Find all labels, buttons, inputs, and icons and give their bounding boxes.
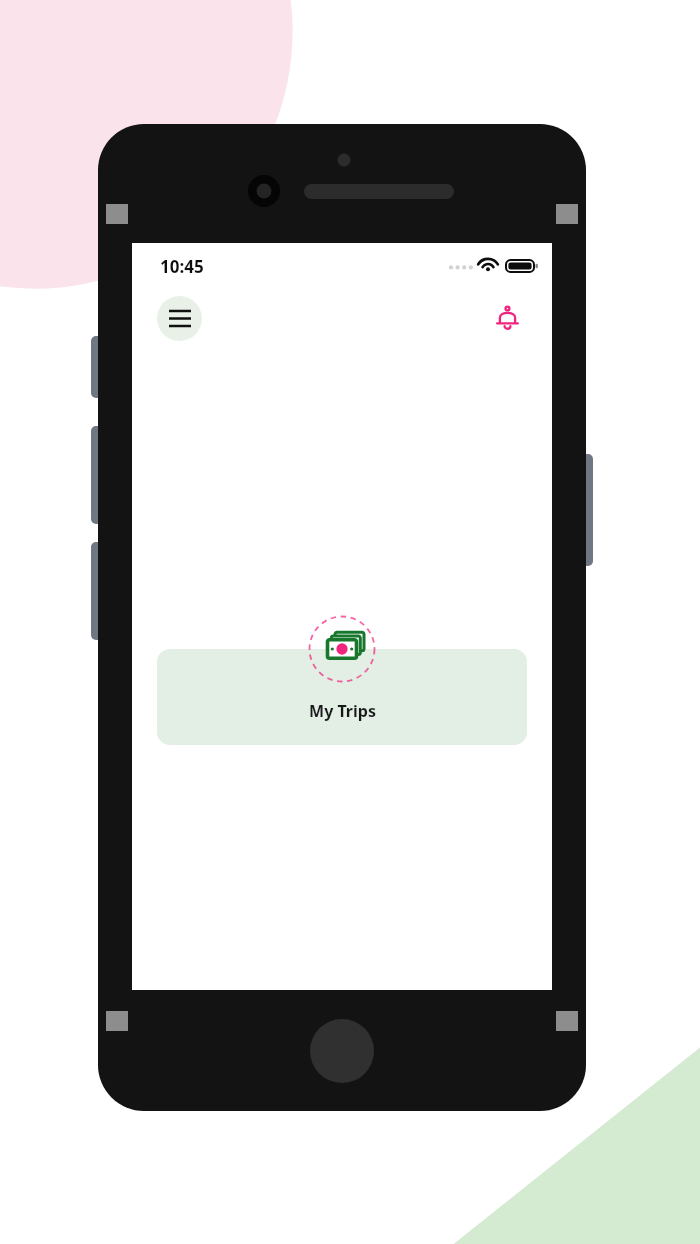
button[interactable]: Notifications bbox=[487, 298, 527, 338]
button[interactable]: Menu bbox=[157, 296, 202, 341]
staticText: 10:45 bbox=[160, 255, 204, 278]
button[interactable]: My Trips bbox=[157, 649, 527, 745]
button[interactable]: Home bbox=[310, 1019, 374, 1083]
staticText: My Trips bbox=[309, 700, 376, 722]
